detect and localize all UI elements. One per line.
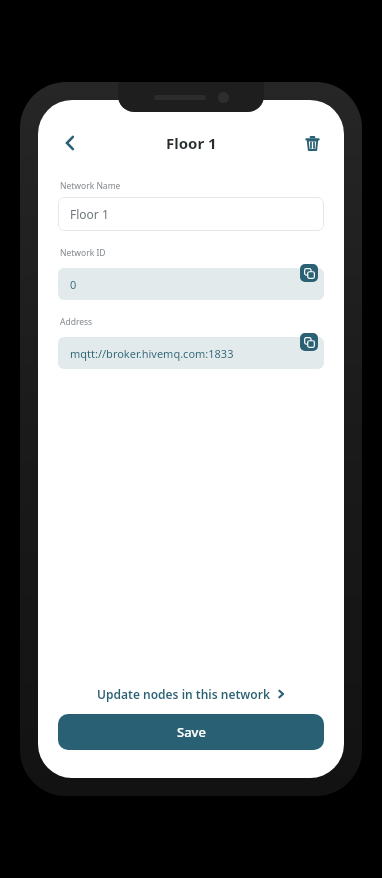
button[interactable]: Delete — [294, 126, 330, 160]
button[interactable]: Update nodes in this network — [89, 682, 294, 706]
staticText: Floor 1 — [166, 133, 217, 153]
staticText: Network ID — [60, 247, 106, 259]
staticText: Network Name — [60, 180, 121, 192]
button[interactable]: Save — [58, 714, 324, 750]
button[interactable]: Copy — [300, 264, 318, 282]
staticText: Floor 1 — [70, 206, 109, 222]
button[interactable]: Floor 1 — [58, 197, 324, 231]
staticText: Save — [177, 723, 206, 741]
staticText: mqtt://broker.hivemq.com:1833 — [70, 346, 234, 361]
staticText: Address — [60, 316, 93, 328]
button[interactable]: mqtt://broker.hivemq.com:1833 — [58, 337, 324, 369]
staticText: Update nodes in this network — [97, 686, 270, 702]
button[interactable]: Back — [52, 126, 88, 160]
button[interactable]: Copy — [300, 333, 318, 351]
button[interactable]: 0 — [58, 268, 324, 300]
staticText: 0 — [70, 277, 77, 292]
